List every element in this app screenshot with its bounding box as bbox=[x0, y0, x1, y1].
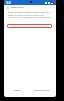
button[interactable]: Cancel bbox=[4, 87, 28, 93]
staticText: Smart Tools bbox=[11, 6, 24, 9]
button[interactable]: Manual Control bbox=[28, 87, 56, 93]
staticText: Manual Control bbox=[34, 89, 50, 92]
button[interactable]: Back bbox=[5, 5, 10, 10]
staticText: 9:41 bbox=[6, 1, 12, 5]
staticText: Enter the 6 digit code that was sent to … bbox=[8, 11, 52, 18]
staticText: Cancel bbox=[13, 89, 20, 92]
button[interactable] bbox=[7, 24, 52, 28]
